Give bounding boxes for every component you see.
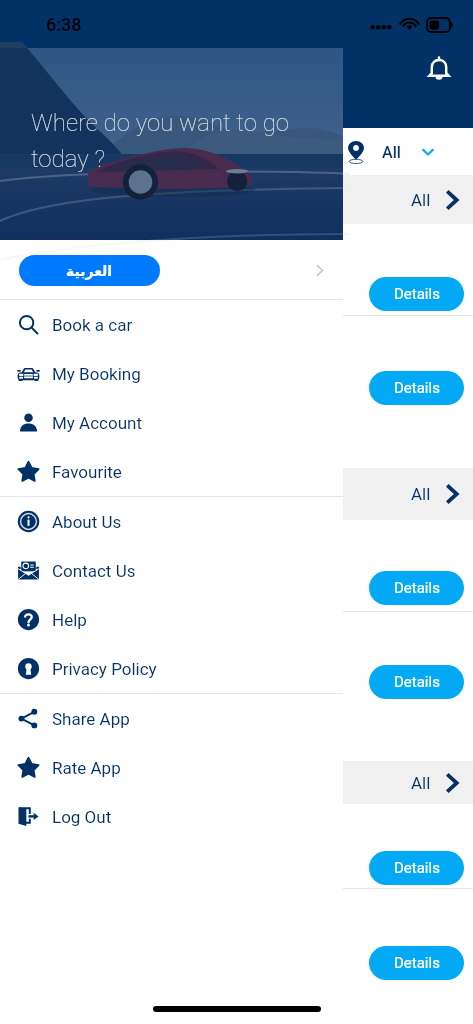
staticText: Where do you want to go — [31, 109, 290, 137]
staticText: My Booking — [52, 364, 141, 384]
button[interactable]: العربية — [19, 255, 160, 286]
staticText: 6:38 — [46, 14, 82, 35]
button[interactable]: Book a car — [0, 300, 343, 349]
staticText: All — [411, 773, 431, 793]
button[interactable]: All — [0, 761, 473, 804]
button[interactable]: My Account — [0, 398, 343, 447]
button[interactable]: Share App — [0, 694, 343, 743]
staticText: Details — [394, 285, 440, 303]
staticText: Privacy Policy — [52, 659, 157, 679]
button[interactable]: Help — [0, 595, 343, 644]
button[interactable]: Rate App — [0, 743, 343, 792]
staticText: Book a car — [52, 315, 133, 335]
button[interactable]: Details — [369, 851, 464, 885]
button[interactable]: Details — [369, 665, 464, 699]
button[interactable]: Details — [369, 371, 464, 405]
button[interactable]: All — [0, 175, 473, 224]
staticText: Details — [394, 859, 440, 877]
staticText: Help — [52, 610, 87, 630]
button[interactable]: Details — [369, 277, 464, 311]
staticText: Contact Us — [52, 561, 136, 581]
button[interactable]: Notifications — [423, 53, 455, 85]
button[interactable]: Details — [369, 571, 464, 605]
staticText: Share App — [52, 709, 130, 729]
button[interactable]: All — [0, 468, 473, 520]
staticText: العربية — [66, 263, 113, 279]
staticText: Details — [394, 579, 440, 597]
staticText: Rate App — [52, 758, 121, 778]
button[interactable]: My Booking — [0, 349, 343, 398]
staticText: About Us — [52, 512, 122, 532]
staticText: All — [411, 190, 431, 210]
button[interactable]: About Us — [0, 497, 343, 546]
staticText: My Account — [52, 413, 143, 433]
button[interactable]: Details — [369, 946, 464, 980]
button[interactable]: More — [311, 262, 328, 279]
staticText: Details — [394, 379, 440, 397]
staticText: Log Out — [52, 807, 112, 827]
staticText: All — [382, 143, 401, 162]
button[interactable]: Favourite — [0, 447, 343, 496]
staticText: Details — [394, 673, 440, 691]
button[interactable]: Privacy Policy — [0, 644, 343, 693]
button[interactable]: Contact Us — [0, 546, 343, 595]
button[interactable]: All — [347, 140, 437, 164]
button[interactable]: Log Out — [0, 792, 343, 841]
staticText: Details — [394, 954, 440, 972]
staticText: today ? — [31, 145, 105, 173]
staticText: Favourite — [52, 462, 122, 482]
staticText: All — [411, 484, 431, 504]
